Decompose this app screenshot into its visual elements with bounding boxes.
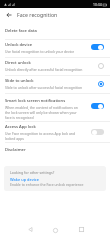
staticText: locked apps [5,136,24,141]
staticText: Smart lock screen notifications [5,98,66,104]
staticText: Unlock directly after successful facial … [5,67,83,72]
staticText: Face recognition [17,11,58,18]
staticText: Slide to unlock [5,78,34,84]
button[interactable]: Slide to unlock [0,75,110,93]
button[interactable]: Direct unlock [88,61,107,70]
staticText: face is recognised [5,115,34,120]
button[interactable]: Switch off [88,127,107,136]
button[interactable]: Switch on [88,101,107,110]
button[interactable]: Access App lock [0,121,110,143]
button[interactable]: Slide to unlock [88,79,107,88]
staticText: 10:34 [93,2,102,7]
staticText: Wake up device [10,177,39,182]
staticText: Looking for other settings? [10,170,55,175]
staticText: Disclaimer [5,147,26,153]
button[interactable]: Looking for other settings? [4,166,106,191]
staticText: Use facial recognition to unlock your de… [5,49,75,54]
button[interactable]: Switch on [88,42,107,51]
button[interactable]: Recents [72,220,90,238]
staticText: Enable to enhance the Face unlock experi… [10,182,84,187]
staticText: Delete face data [5,28,37,34]
staticText: Access App lock [5,124,36,130]
button[interactable]: Home [46,221,64,238]
button[interactable]: Back [21,220,39,238]
staticText: Use Face recognition to access App lock … [5,131,75,136]
button[interactable]: Smart lock screen notifications [0,95,110,122]
staticText: Unlock device [5,42,32,48]
button[interactable]: Delete face data [0,24,110,38]
button[interactable]: Direct unlock [0,57,110,75]
staticText: Direct unlock [5,60,31,66]
staticText: When enabled, the content of notificatio… [5,105,78,110]
button[interactable]: Unlock device [0,39,110,57]
button[interactable]: Back [3,9,15,21]
staticText: Slide to unlock after successful facial … [5,85,83,90]
staticText: the lock screen will only be shown when … [5,110,77,115]
